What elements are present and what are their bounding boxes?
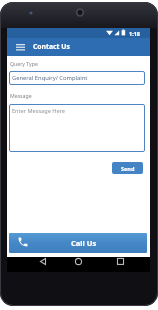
staticText: Query Type xyxy=(10,60,38,67)
button[interactable]: Call Us xyxy=(9,233,147,253)
button[interactable]: Enter Message Here xyxy=(9,104,145,152)
staticText: Enter Message Here xyxy=(12,107,65,115)
staticText: Send xyxy=(121,165,135,172)
staticText: 1:18 xyxy=(129,30,140,37)
button[interactable] xyxy=(13,41,27,53)
staticText: Contact Us xyxy=(33,42,70,51)
button[interactable]: Send xyxy=(112,162,143,174)
staticText: Call Us xyxy=(71,238,97,248)
button[interactable]: General Enquiry/ Complaint xyxy=(9,71,145,85)
staticText: Message xyxy=(10,92,32,99)
staticText: General Enquiry/ Complaint xyxy=(12,74,88,82)
